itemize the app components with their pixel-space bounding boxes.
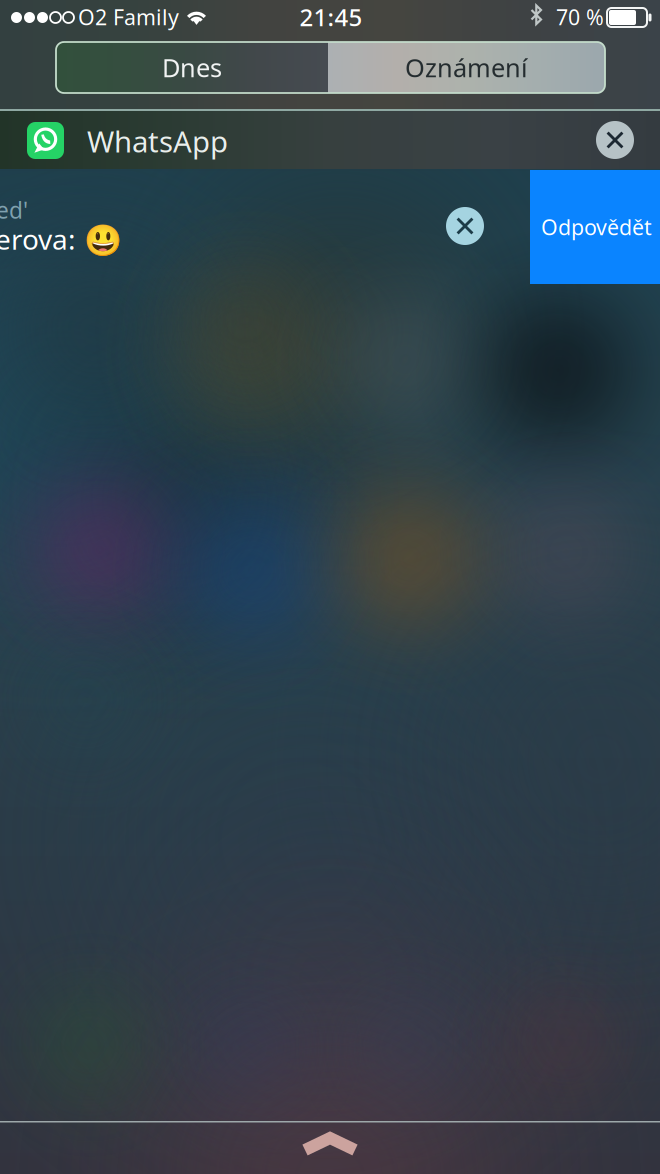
staticText: ed'	[0, 195, 28, 225]
staticText: Oznámení	[405, 51, 528, 84]
staticText: WhatsApp	[87, 121, 228, 160]
button[interactable]: Dnes	[56, 42, 328, 93]
staticText: Dnes	[162, 51, 222, 84]
staticText: O2 Family	[78, 3, 179, 31]
button[interactable]: Oznámení	[328, 42, 605, 93]
staticText: Odpovědět	[541, 213, 652, 241]
staticText: 21:45	[299, 1, 362, 33]
button[interactable]: Odpovědět	[530, 170, 660, 284]
staticText: 😃	[84, 223, 122, 258]
button[interactable]: Dismiss notification	[446, 207, 484, 245]
button[interactable]: Clear WhatsApp notifications	[596, 121, 634, 159]
staticText: erova:	[0, 220, 76, 258]
staticText: 70 %	[556, 3, 604, 31]
